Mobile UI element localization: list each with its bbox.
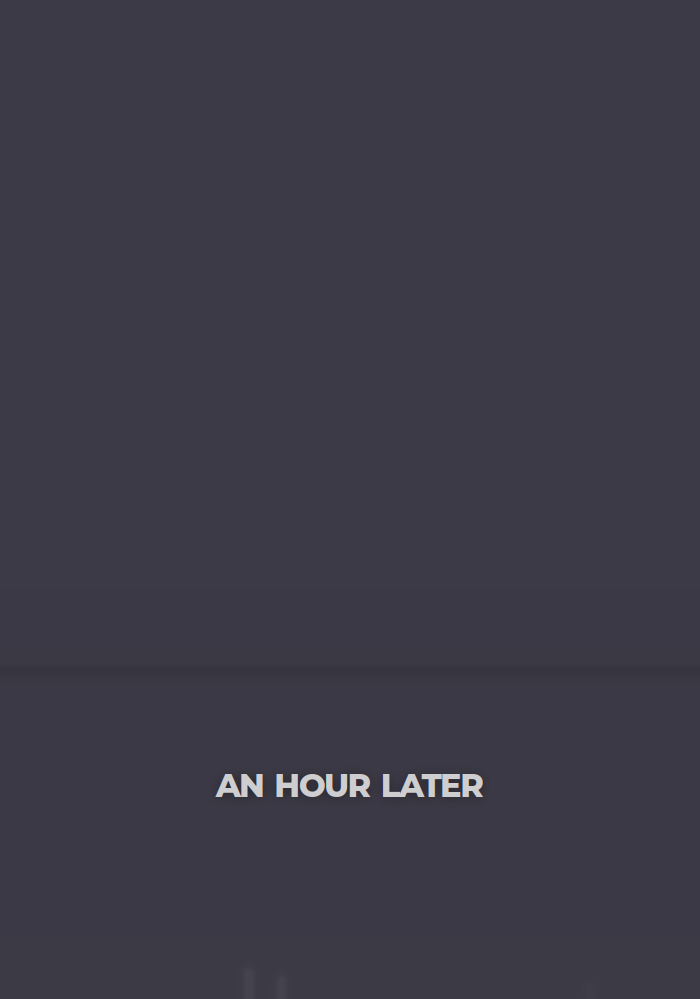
button[interactable]: An hour later — tap to continue: [0, 0, 700, 999]
staticText: AN HOUR LATER: [216, 766, 484, 805]
